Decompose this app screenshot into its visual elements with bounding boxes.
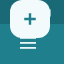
button[interactable]: Compose (10, 0, 50, 38)
staticText: 9:41 (12, 5, 34, 20)
button[interactable]: Menu (10, 26, 46, 62)
